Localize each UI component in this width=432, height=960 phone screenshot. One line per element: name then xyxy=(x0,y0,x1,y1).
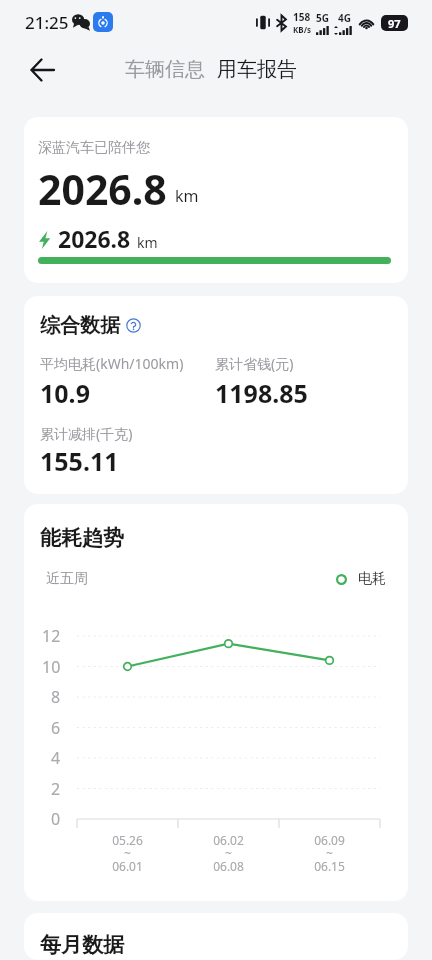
staticText: 用车报告 xyxy=(217,57,297,82)
staticText: 能耗趋势 xyxy=(40,525,124,551)
staticText: 综合数据 xyxy=(40,313,120,338)
staticText: km xyxy=(137,233,158,252)
staticText: 近五周 xyxy=(46,570,88,588)
staticText: 06.09 ~ 06.15 xyxy=(314,832,345,875)
staticText: 97 xyxy=(388,16,401,31)
staticText: 累计减排(千克) xyxy=(40,424,133,443)
button[interactable]: 车辆信息 xyxy=(119,50,211,89)
staticText: 累计省钱(元) xyxy=(215,354,294,373)
staticText: 21:25 xyxy=(25,11,69,34)
staticText: 2026.8 xyxy=(58,223,131,254)
staticText: 158 xyxy=(293,10,311,24)
button[interactable]: 用车报告 xyxy=(211,50,303,89)
staticText: 1198.85 xyxy=(215,376,308,410)
button[interactable]: 综合数据 xyxy=(24,296,408,494)
staticText: KB/s xyxy=(293,24,311,35)
staticText: 8 xyxy=(51,686,61,708)
staticText: 车辆信息 xyxy=(125,57,205,82)
staticText: 每月数据 xyxy=(40,932,124,958)
staticText: 05.26 ~ 06.01 xyxy=(112,832,143,875)
staticText: 12 xyxy=(42,625,61,647)
button[interactable]: Help xyxy=(126,318,141,333)
button[interactable]: 深蓝汽车已陪伴您 xyxy=(24,117,408,283)
staticText: 5G xyxy=(316,11,329,25)
staticText: 4G xyxy=(338,11,351,25)
button[interactable]: 电耗 xyxy=(336,570,394,588)
staticText: 6 xyxy=(51,717,61,739)
staticText: 2 xyxy=(51,778,61,800)
staticText: 2026.8 xyxy=(38,161,167,217)
staticText: 10 xyxy=(42,656,61,678)
staticText: km xyxy=(175,185,199,207)
staticText: 深蓝汽车已陪伴您 xyxy=(38,139,150,157)
staticText: 4 xyxy=(51,747,61,769)
button[interactable]: Back xyxy=(21,48,65,92)
staticText: 0 xyxy=(51,808,61,830)
staticText: 155.11 xyxy=(40,444,119,478)
staticText: 06.02 ~ 06.08 xyxy=(213,832,244,875)
staticText: 平均电耗(kWh/100km) xyxy=(40,354,184,373)
staticText: 10.9 xyxy=(40,376,90,410)
staticText: 电耗 xyxy=(358,570,386,588)
